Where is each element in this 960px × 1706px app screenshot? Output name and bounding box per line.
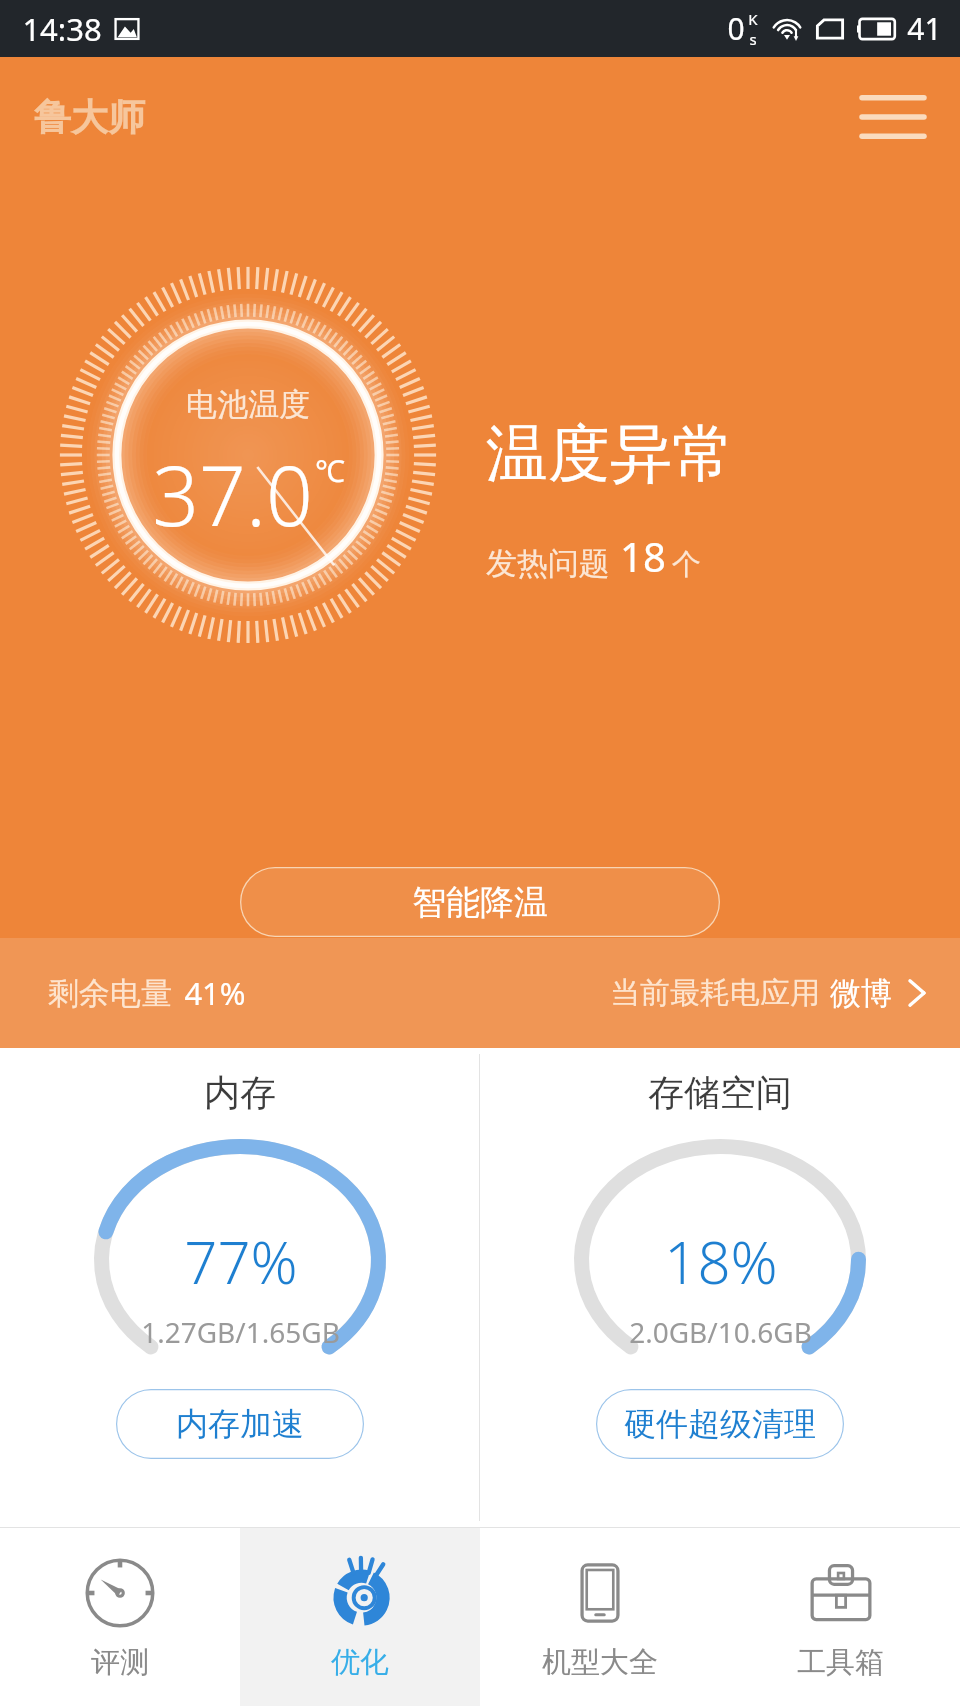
staticText: ℃ bbox=[315, 450, 345, 491]
button[interactable]: 机型大全 bbox=[480, 1528, 720, 1706]
staticText: 0 bbox=[727, 8, 745, 49]
staticText: 微博 bbox=[830, 974, 892, 1013]
staticText: 37.0 bbox=[152, 438, 313, 550]
staticText: 发热问题 bbox=[486, 544, 610, 583]
staticText: 当前最耗电应用 bbox=[610, 974, 820, 1012]
staticText: 个 bbox=[672, 546, 701, 583]
staticText: 机型大全 bbox=[542, 1644, 658, 1681]
staticText: 鲁大师 bbox=[34, 94, 145, 141]
staticText: 温度异常 bbox=[486, 415, 734, 493]
staticText: 41 bbox=[907, 8, 942, 49]
staticText: 14:38 bbox=[22, 8, 102, 50]
button[interactable]: 优化 bbox=[240, 1528, 480, 1706]
button[interactable]: 内存加速 bbox=[116, 1389, 364, 1459]
button[interactable]: 智能降温 bbox=[240, 867, 720, 937]
staticText: 智能降温 bbox=[412, 881, 548, 924]
staticText: 工具箱 bbox=[797, 1644, 884, 1681]
staticText: 2.0GB/10.6GB bbox=[629, 1313, 812, 1351]
staticText: 内存加速 bbox=[176, 1404, 304, 1444]
button[interactable]: 工具箱 bbox=[720, 1528, 960, 1706]
staticText: 18% bbox=[664, 1222, 778, 1301]
staticText: 剩余电量 bbox=[48, 974, 172, 1013]
staticText: 硬件超级清理 bbox=[624, 1404, 816, 1444]
staticText: 电池温度 bbox=[186, 385, 310, 424]
button[interactable]: Menu bbox=[856, 85, 930, 149]
staticText: 评测 bbox=[91, 1644, 149, 1681]
staticText: 内存 bbox=[204, 1070, 276, 1115]
staticText: 1.27GB/1.65GB bbox=[141, 1313, 340, 1351]
staticText: 18 bbox=[620, 529, 666, 583]
button[interactable]: 硬件超级清理 bbox=[596, 1389, 844, 1459]
staticText: s bbox=[749, 29, 757, 49]
staticText: 存储空间 bbox=[648, 1070, 792, 1115]
button[interactable]: 评测 bbox=[0, 1528, 240, 1706]
staticText: 77% bbox=[184, 1222, 298, 1301]
staticText: 优化 bbox=[331, 1644, 389, 1681]
staticText: K bbox=[748, 9, 758, 29]
button[interactable]: 剩余电量 bbox=[0, 938, 960, 1048]
staticText: 41% bbox=[184, 972, 246, 1014]
